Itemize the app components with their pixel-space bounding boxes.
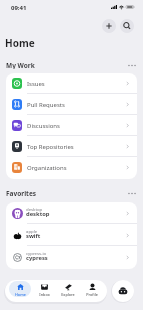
staticText: Home (15, 292, 26, 297)
button[interactable]: Search (120, 19, 134, 33)
button[interactable]: cypress-io (6, 246, 137, 268)
staticText: Discussions (27, 122, 60, 130)
button[interactable]: Copilot (112, 280, 134, 302)
button[interactable]: More options (127, 189, 137, 197)
staticText: swift (26, 232, 41, 240)
staticText: My Work (6, 61, 35, 69)
button[interactable]: Inbox (33, 281, 55, 297)
button[interactable]: Top Repositories (6, 136, 137, 157)
staticText: Home (5, 36, 35, 50)
button[interactable]: Issues (6, 73, 137, 94)
staticText: Profile (86, 292, 98, 297)
staticText: Organizations (27, 164, 67, 172)
button[interactable]: Profile (81, 281, 103, 297)
staticText: Pull Requests (27, 101, 65, 109)
button[interactable]: Explore (57, 281, 79, 297)
staticText: cypress-io (26, 250, 47, 256)
staticText: Favorites (6, 189, 37, 197)
button[interactable]: desktop (6, 202, 137, 224)
button[interactable]: Add (102, 19, 116, 33)
staticText: cypress (26, 254, 48, 262)
staticText: Inbox (39, 292, 50, 297)
button[interactable]: Home (9, 281, 31, 297)
staticText: desktop (26, 206, 43, 212)
button[interactable]: Organizations (6, 157, 137, 178)
staticText: Top Repositories (27, 143, 74, 151)
button[interactable]: Pull Requests (6, 94, 137, 115)
button[interactable]: More options (127, 61, 137, 69)
button[interactable]: apple (6, 224, 137, 246)
staticText: Explore (61, 292, 75, 297)
button[interactable]: Discussions (6, 115, 137, 136)
staticText: desktop (26, 210, 50, 218)
staticText: apple (26, 228, 38, 234)
staticText: Issues (27, 80, 45, 88)
staticText: 09:41 (11, 4, 27, 12)
